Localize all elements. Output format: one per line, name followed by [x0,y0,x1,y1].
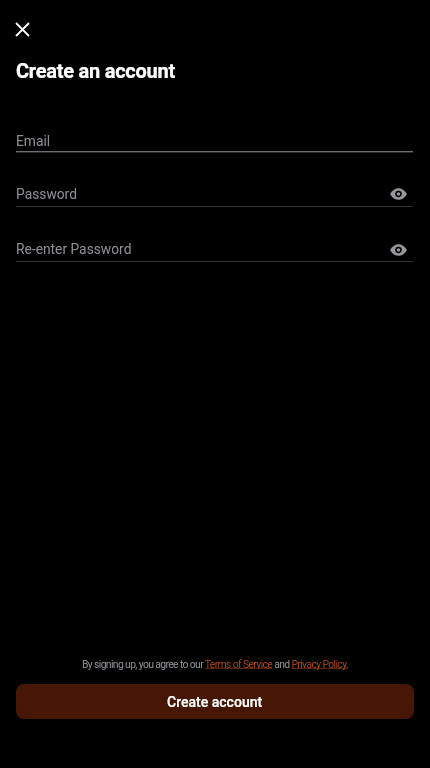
button[interactable]: Email [0,126,430,157]
button[interactable]: Re-enter Password [0,234,430,266]
staticText: Email [16,133,51,149]
staticText: Password [16,186,77,202]
button[interactable]: Create account [16,684,414,719]
button[interactable]: Password [0,179,430,211]
button[interactable]: Show password [387,183,409,205]
staticText: Re-enter Password [16,241,132,257]
staticText: By signing up, you agree to our Terms of… [0,658,430,670]
button[interactable]: Close [7,14,37,44]
button[interactable]: Show password [387,239,409,261]
staticText: Create an account [16,59,176,82]
staticText: Create account [167,694,263,710]
